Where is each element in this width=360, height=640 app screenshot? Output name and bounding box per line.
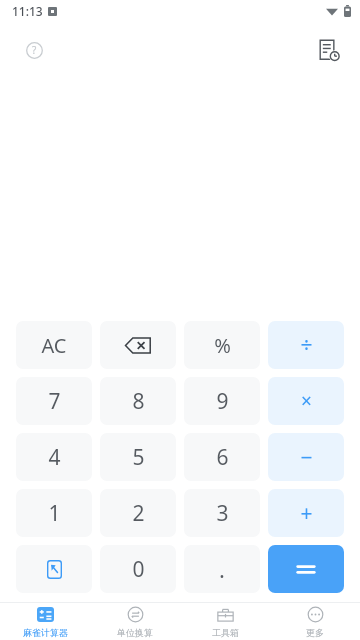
button[interactable]: 6 [184,433,260,481]
button[interactable]: × [268,377,344,425]
staticText: . [219,554,225,584]
button[interactable]: 3 [184,489,260,537]
staticText: 麻雀计算器 [23,627,68,638]
staticText: 4 [48,443,61,472]
staticText: 单位换算 [117,627,153,638]
staticText: AC [41,332,67,359]
button[interactable]: Help [18,34,50,66]
button[interactable]: + [268,489,344,537]
button[interactable]: 麻雀计算器 [0,603,90,640]
button[interactable]: Copy result [16,545,92,593]
button[interactable]: 5 [100,433,176,481]
staticText: % [214,332,231,359]
staticText: 7 [48,387,61,416]
button[interactable]: 0 [100,545,176,593]
button[interactable]: History [312,33,346,67]
staticText: 更多 [306,627,324,638]
button[interactable]: % [184,321,260,369]
staticText: ? [32,43,37,57]
staticText: 0 [132,555,145,584]
button[interactable]: 9 [184,377,260,425]
button[interactable]: . [184,545,260,593]
button[interactable]: 8 [100,377,176,425]
button[interactable]: AC [16,321,92,369]
button[interactable]: 单位换算 [90,603,180,640]
staticText: + [300,499,313,528]
button[interactable]: Backspace [100,321,176,369]
staticText: 8 [132,387,145,416]
staticText: 1 [48,499,61,528]
staticText: 6 [216,443,229,472]
button[interactable]: 工具箱 [180,603,270,640]
staticText: − [300,443,313,472]
staticText: 5 [132,443,145,472]
staticText: 2 [132,499,145,528]
staticText: ÷ [300,331,313,360]
button[interactable]: 1 [16,489,92,537]
staticText: 工具箱 [212,627,239,638]
button[interactable]: 更多 [270,603,360,640]
staticText: 9 [216,387,229,416]
button[interactable]: 4 [16,433,92,481]
button[interactable]: Equals [268,545,344,593]
button[interactable]: 7 [16,377,92,425]
staticText: × [301,388,312,414]
button[interactable]: ÷ [268,321,344,369]
staticText: 11:13 [12,3,43,19]
button[interactable]: 2 [100,489,176,537]
staticText: 3 [216,499,229,528]
button[interactable]: − [268,433,344,481]
